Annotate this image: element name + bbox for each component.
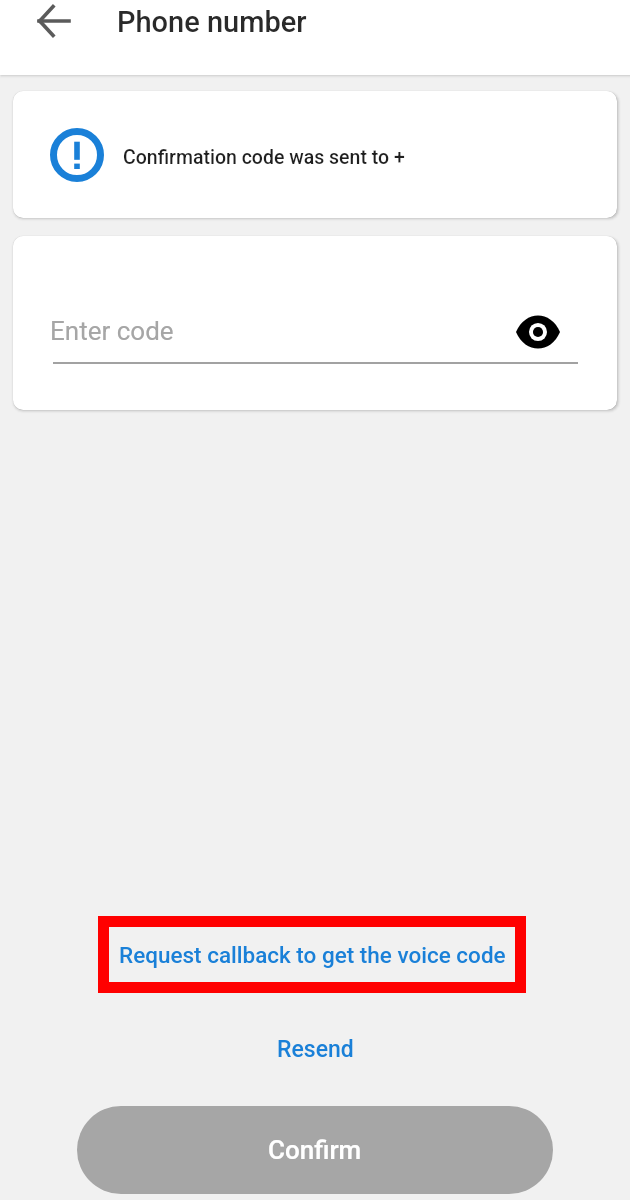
button[interactable]: Request callback to get the voice code <box>98 916 526 993</box>
button[interactable]: Show code <box>514 308 562 356</box>
staticText: Request callback to get the voice code <box>119 942 506 968</box>
button[interactable]: Resend <box>255 1026 375 1072</box>
staticText: Resend <box>277 1036 354 1063</box>
button[interactable]: Back <box>14 0 94 42</box>
button[interactable]: Confirm <box>77 1106 553 1194</box>
staticText: Confirm <box>268 1135 362 1165</box>
staticText: Phone number <box>117 5 307 39</box>
staticText: Enter code <box>50 316 174 346</box>
staticText: Confirmation code was sent to + <box>123 146 405 169</box>
